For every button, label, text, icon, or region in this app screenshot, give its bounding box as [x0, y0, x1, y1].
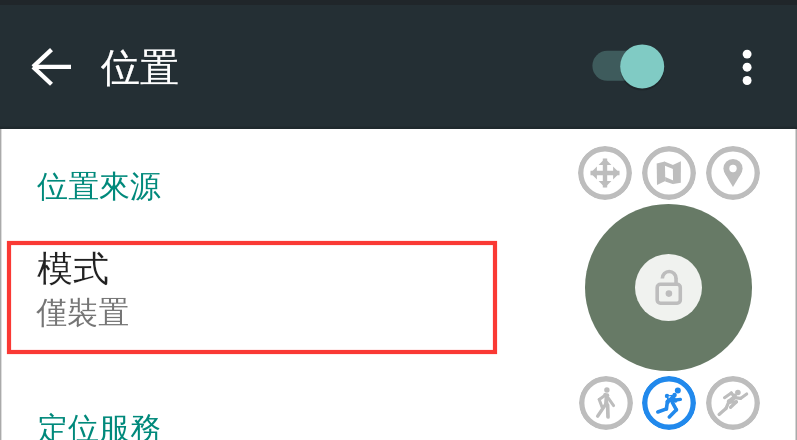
staticText: 模式	[37, 246, 109, 291]
staticText: 僅裝置	[36, 293, 129, 332]
button[interactable]: Back	[22, 42, 82, 102]
staticText: 位置來源	[37, 167, 161, 206]
staticText: 位置	[101, 43, 179, 92]
button[interactable]: More options	[722, 37, 774, 89]
button[interactable]: Run	[642, 376, 696, 430]
button[interactable]: Toggle location	[588, 42, 674, 96]
staticText: 定位服務	[37, 409, 161, 440]
button[interactable]: Unlock	[585, 204, 752, 371]
button[interactable]: Map	[642, 146, 696, 200]
button[interactable]: Move	[578, 146, 632, 200]
button[interactable]: Walk	[579, 376, 633, 430]
button[interactable]: 模式	[0, 241, 797, 353]
button[interactable]: Sprint	[706, 376, 760, 430]
button[interactable]: Pin	[706, 146, 760, 200]
